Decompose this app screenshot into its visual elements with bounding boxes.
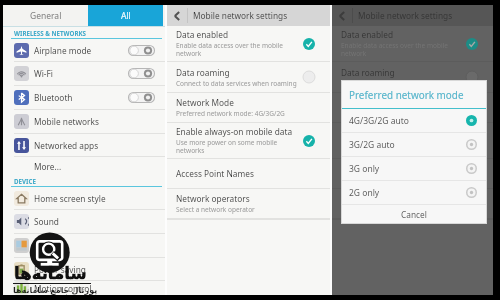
button[interactable]: Toggle (128, 92, 155, 103)
staticText: Display (34, 240, 63, 251)
button[interactable]: General (3, 5, 88, 26)
button[interactable]: Back (167, 5, 187, 26)
button[interactable]: Bluetooth (3, 86, 165, 110)
staticText: Connect to data services when roaming (341, 79, 462, 88)
button[interactable]: Data roaming (167, 62, 330, 93)
button[interactable]: Data roaming (332, 62, 493, 93)
staticText: پورتال جامع سامانه‌ها (13, 284, 98, 295)
staticText: Enable always-on mobile data (176, 126, 293, 137)
staticText: Enable data access over the mobile netwo… (341, 41, 448, 58)
staticText: Preferred network mode: 4G/3G/2G (176, 109, 285, 118)
staticText: WIRELESS & NETWORKS (14, 29, 86, 37)
staticText: Use more power on some mobile networks (341, 138, 443, 155)
staticText: Data roaming (341, 67, 395, 78)
staticText: All (121, 10, 131, 22)
staticText: 3G/2G auto (349, 139, 395, 151)
button[interactable]: Network Mode (167, 93, 330, 123)
button[interactable]: Data enabled (332, 26, 493, 62)
staticText: 3G only (349, 163, 380, 175)
button[interactable]: All (88, 5, 163, 26)
button[interactable]: Toggle (128, 68, 155, 79)
staticText: Cancel (401, 209, 427, 220)
staticText: DEVICE (14, 177, 36, 185)
staticText: General (30, 10, 62, 22)
staticText: Bluetooth (34, 92, 73, 103)
button[interactable]: Back (332, 5, 352, 26)
button[interactable]: Motion control (3, 281, 165, 295)
button[interactable]: Display (3, 234, 165, 258)
staticText: Select a network operator (341, 205, 420, 214)
button[interactable]: 3G/2G auto (342, 133, 486, 157)
button[interactable]: Network Mode (332, 93, 493, 123)
staticText: Network Mode (341, 97, 399, 108)
staticText: 4G/3G/2G auto (349, 115, 409, 127)
staticText: Enable always-on mobile data (341, 126, 458, 137)
staticText: Network Mode (176, 97, 234, 108)
button[interactable]: Networked apps (3, 134, 165, 157)
button[interactable]: Cancel (342, 205, 486, 223)
button[interactable]: Data enabled (167, 26, 330, 62)
staticText: Networked apps (34, 140, 99, 151)
button[interactable]: 4G/3G/2G auto (342, 109, 486, 133)
staticText: Network operators (341, 193, 415, 204)
button[interactable]: Toggle (128, 45, 155, 56)
staticText: Data roaming (176, 67, 230, 78)
staticText: Wi-Fi (34, 68, 53, 79)
staticText: Mobile network settings (358, 10, 453, 21)
button[interactable]: Network operators (332, 189, 493, 219)
staticText: Mobile network settings (193, 10, 288, 21)
button[interactable]: Power saving (3, 258, 165, 281)
staticText: Network operators (176, 193, 250, 204)
button[interactable]: Home screen style (3, 187, 165, 210)
staticText: Preferred network mode (349, 88, 464, 101)
staticText: More... (34, 161, 62, 172)
button[interactable]: Sound (3, 210, 165, 234)
staticText: سامانه‌ها (14, 264, 87, 283)
staticText: Access Point Names (341, 168, 419, 179)
button[interactable]: Mobile networks (3, 110, 165, 134)
button[interactable]: Access Point Names (167, 159, 330, 189)
staticText: Connect to data services when roaming (176, 79, 297, 88)
button[interactable]: Airplane mode (3, 39, 165, 62)
button[interactable]: Access Point Names (332, 159, 493, 189)
button[interactable]: Wi-Fi (3, 62, 165, 86)
button[interactable]: More... (3, 157, 165, 175)
staticText: Data enabled (176, 29, 229, 40)
staticText: Access Point Names (176, 168, 254, 179)
staticText: Home screen style (34, 193, 106, 204)
button[interactable]: 2G only (342, 181, 486, 205)
staticText: 2G only (349, 187, 380, 199)
button[interactable]: Enable always-on mobile data (167, 123, 330, 159)
staticText: Mobile networks (34, 116, 99, 127)
button[interactable]: Enable always-on mobile data (332, 123, 493, 159)
button[interactable]: 3G only (342, 157, 486, 181)
staticText: Data enabled (341, 29, 394, 40)
staticText: Airplane mode (34, 45, 92, 56)
staticText: Preferred network mode: 4G/3G/2G (341, 109, 450, 118)
staticText: Enable data access over the mobile netwo… (176, 41, 283, 58)
staticText: Power saving (34, 264, 86, 275)
button[interactable]: Network operators (167, 189, 330, 219)
staticText: Select a network operator (176, 205, 255, 214)
staticText: Use more power on some mobile networks (176, 138, 278, 155)
staticText: Motion control (34, 283, 92, 294)
staticText: Sound (34, 216, 59, 227)
